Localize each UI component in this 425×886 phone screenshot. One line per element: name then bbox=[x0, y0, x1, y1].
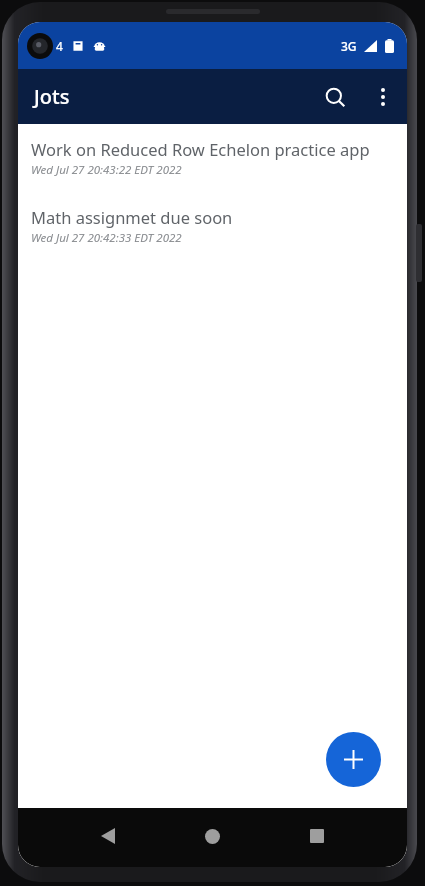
staticText: 4 bbox=[56, 38, 63, 54]
button[interactable]: More options bbox=[359, 73, 407, 121]
button[interactable]: Add note bbox=[326, 732, 381, 787]
button[interactable]: Recent apps bbox=[295, 814, 339, 858]
staticText: 3G bbox=[341, 38, 357, 54]
button[interactable]: Math assignmet due soon bbox=[18, 192, 407, 260]
button[interactable]: Home bbox=[190, 814, 234, 858]
staticText: Math assignmet due soon bbox=[31, 206, 233, 228]
staticText: Wed Jul 27 20:43:22 EDT 2022 bbox=[31, 162, 182, 178]
staticText: Wed Jul 27 20:42:33 EDT 2022 bbox=[31, 230, 182, 246]
button[interactable]: Search bbox=[311, 73, 359, 121]
button[interactable]: Work on Reduced Row Echelon practice app bbox=[18, 124, 407, 192]
button[interactable]: Back bbox=[86, 814, 130, 858]
staticText: Jots bbox=[34, 83, 70, 110]
staticText: Work on Reduced Row Echelon practice app bbox=[31, 138, 370, 160]
